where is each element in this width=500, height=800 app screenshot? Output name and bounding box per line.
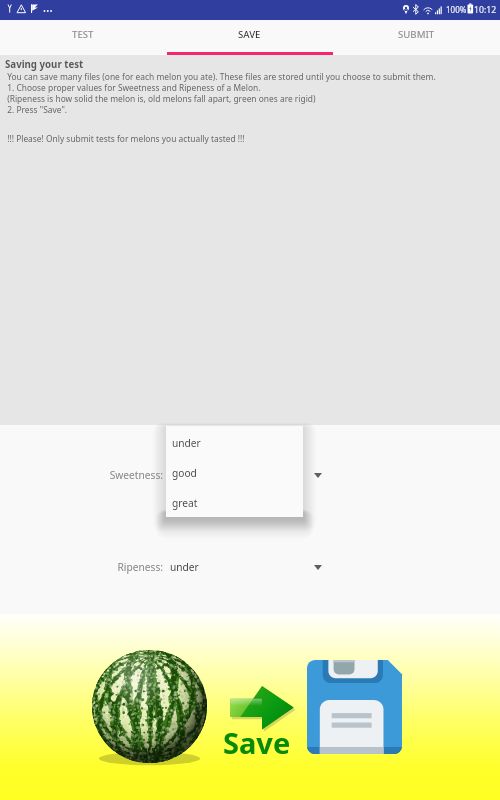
button[interactable]: TEST bbox=[0, 20, 166, 55]
staticText: under bbox=[172, 436, 201, 450]
button[interactable]: great bbox=[166, 492, 303, 514]
staticText: SAVE bbox=[238, 28, 261, 41]
staticText: You can save many files (one for each me… bbox=[5, 71, 436, 115]
button[interactable]: Ripeness: bbox=[0, 556, 500, 578]
staticText: TEST bbox=[72, 28, 94, 41]
staticText: SUBMIT bbox=[398, 28, 435, 41]
staticText: !!! Please! Only submit tests for melons… bbox=[5, 133, 245, 144]
button[interactable]: good bbox=[166, 462, 303, 484]
staticText: good bbox=[172, 466, 197, 480]
staticText: good bbox=[170, 468, 195, 482]
staticText: under bbox=[170, 560, 199, 574]
staticText: 10:12 bbox=[474, 4, 497, 16]
staticText: Sweetness: bbox=[0, 468, 163, 482]
button[interactable]: Sweetness: bbox=[0, 464, 500, 486]
other: Save bbox=[307, 660, 402, 754]
button[interactable]: SUBMIT bbox=[333, 20, 500, 55]
staticText: 100% bbox=[446, 4, 467, 15]
staticText: great bbox=[172, 496, 198, 510]
button[interactable]: SAVE bbox=[166, 20, 333, 55]
staticText: Saving your test bbox=[5, 58, 84, 71]
staticText: Save bbox=[223, 723, 291, 762]
button[interactable]: under bbox=[166, 432, 303, 454]
staticText: Ripeness: bbox=[0, 560, 163, 574]
